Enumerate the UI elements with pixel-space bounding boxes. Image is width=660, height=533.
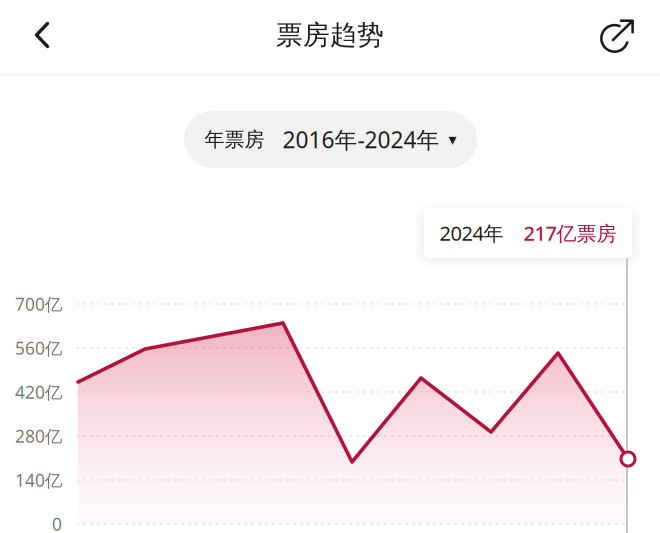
button[interactable]: Back (20, 13, 64, 57)
staticText: 2024年 (439, 220, 503, 246)
staticText: 280亿 (15, 424, 62, 447)
staticText: 年票房 (204, 127, 264, 152)
staticText: 票房趋势 (276, 19, 384, 51)
staticText: ▾ (448, 130, 456, 149)
button[interactable]: 年票房 (184, 111, 477, 168)
button[interactable]: Share (596, 13, 640, 57)
staticText: 700亿 (15, 292, 62, 315)
staticText: 420亿 (15, 380, 62, 403)
staticText: 0 (52, 512, 62, 533)
staticText: 217亿票房 (523, 220, 616, 246)
staticText: 560亿 (15, 336, 62, 359)
staticText: 140亿 (15, 468, 62, 491)
staticText: 2016年-2024年 (282, 124, 439, 154)
